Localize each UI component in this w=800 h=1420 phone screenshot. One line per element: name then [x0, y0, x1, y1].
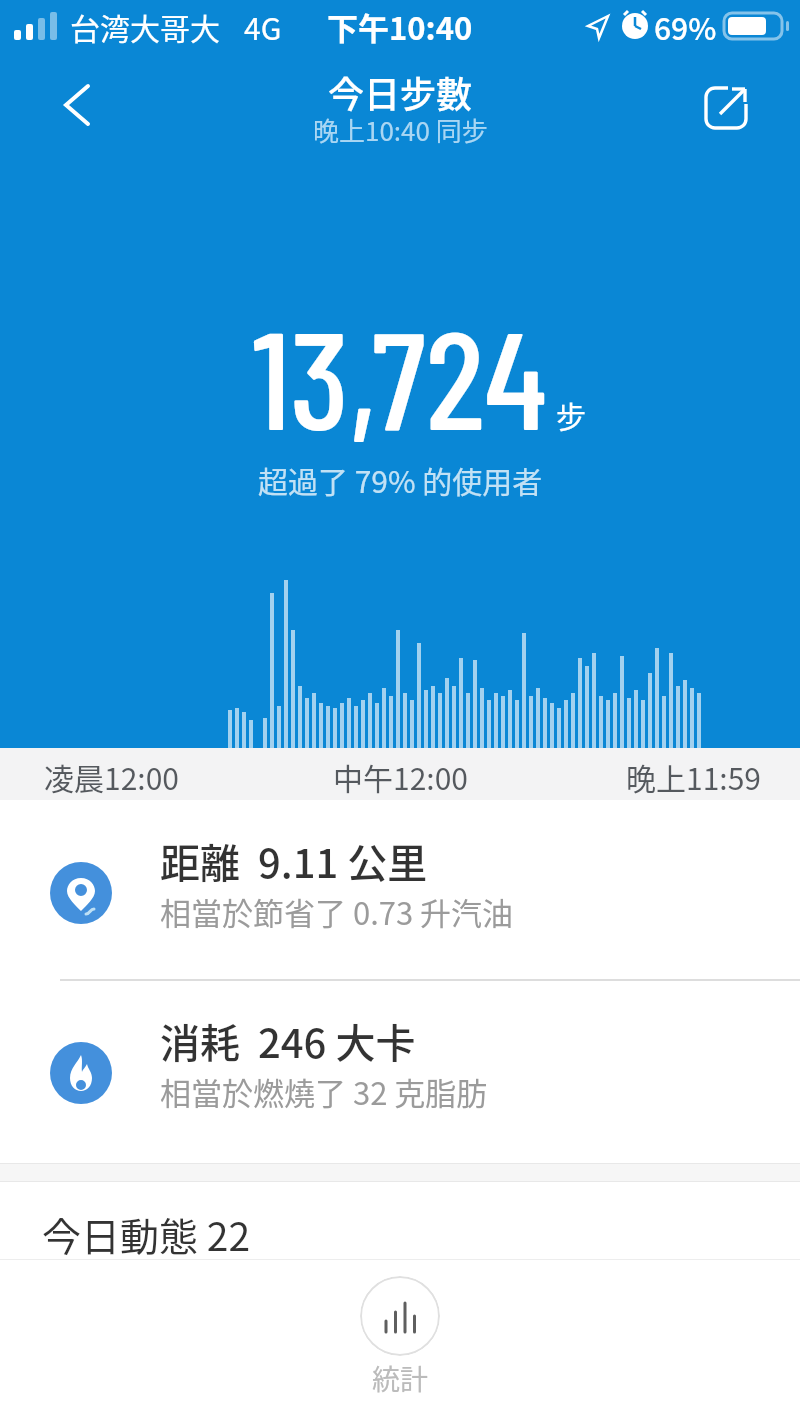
button[interactable]: 消耗 246 大卡: [0, 1000, 800, 1160]
staticText: 相當於燃燒了 32 克脂肪: [160, 1069, 488, 1114]
staticText: 凌晨12:00: [44, 755, 179, 798]
staticText: 相當於節省了 0.73 升汽油: [160, 889, 514, 934]
staticText: 晚上10:40 同步: [313, 111, 488, 149]
button[interactable]: [360, 1276, 440, 1356]
staticText: 台湾大哥大: [70, 5, 220, 48]
staticText: 69%: [654, 5, 717, 48]
staticText: 4G: [244, 5, 282, 48]
staticText: 13,724: [252, 292, 548, 458]
button[interactable]: [698, 78, 754, 134]
staticText: 晚上11:59: [626, 755, 761, 798]
staticText: 距離 9.11 公里: [160, 832, 428, 890]
staticText: 下午10:40: [327, 4, 473, 49]
button[interactable]: 距離 9.11 公里: [0, 820, 800, 980]
staticText: 中午12:00: [333, 755, 468, 798]
staticText: 今日動態 22: [42, 1206, 251, 1262]
staticText: 今日步數: [328, 66, 473, 118]
staticText: 統計: [372, 1358, 429, 1399]
staticText: 超過了 79% 的使用者: [258, 458, 543, 501]
button[interactable]: [48, 80, 98, 130]
staticText: 消耗 246 大卡: [160, 1012, 416, 1070]
staticText: 步: [556, 393, 586, 436]
